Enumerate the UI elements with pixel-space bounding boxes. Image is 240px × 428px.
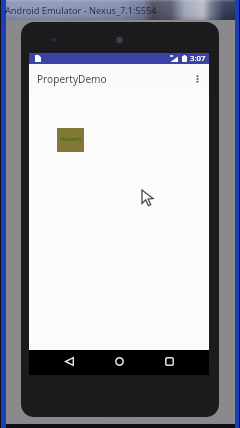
staticText: Android Emulator - Nexus_7.1:5554 [5,4,157,17]
button[interactable]: Home [107,349,131,373]
button[interactable]: Recent apps [157,349,181,373]
button[interactable]: PROPERTY [57,128,84,152]
staticText: 3:07 [190,53,206,64]
staticText: PropertyDemo [37,72,107,86]
button[interactable]: Back [57,349,81,373]
button[interactable]: More options [189,67,206,91]
staticText: PROPERTY [60,137,82,143]
